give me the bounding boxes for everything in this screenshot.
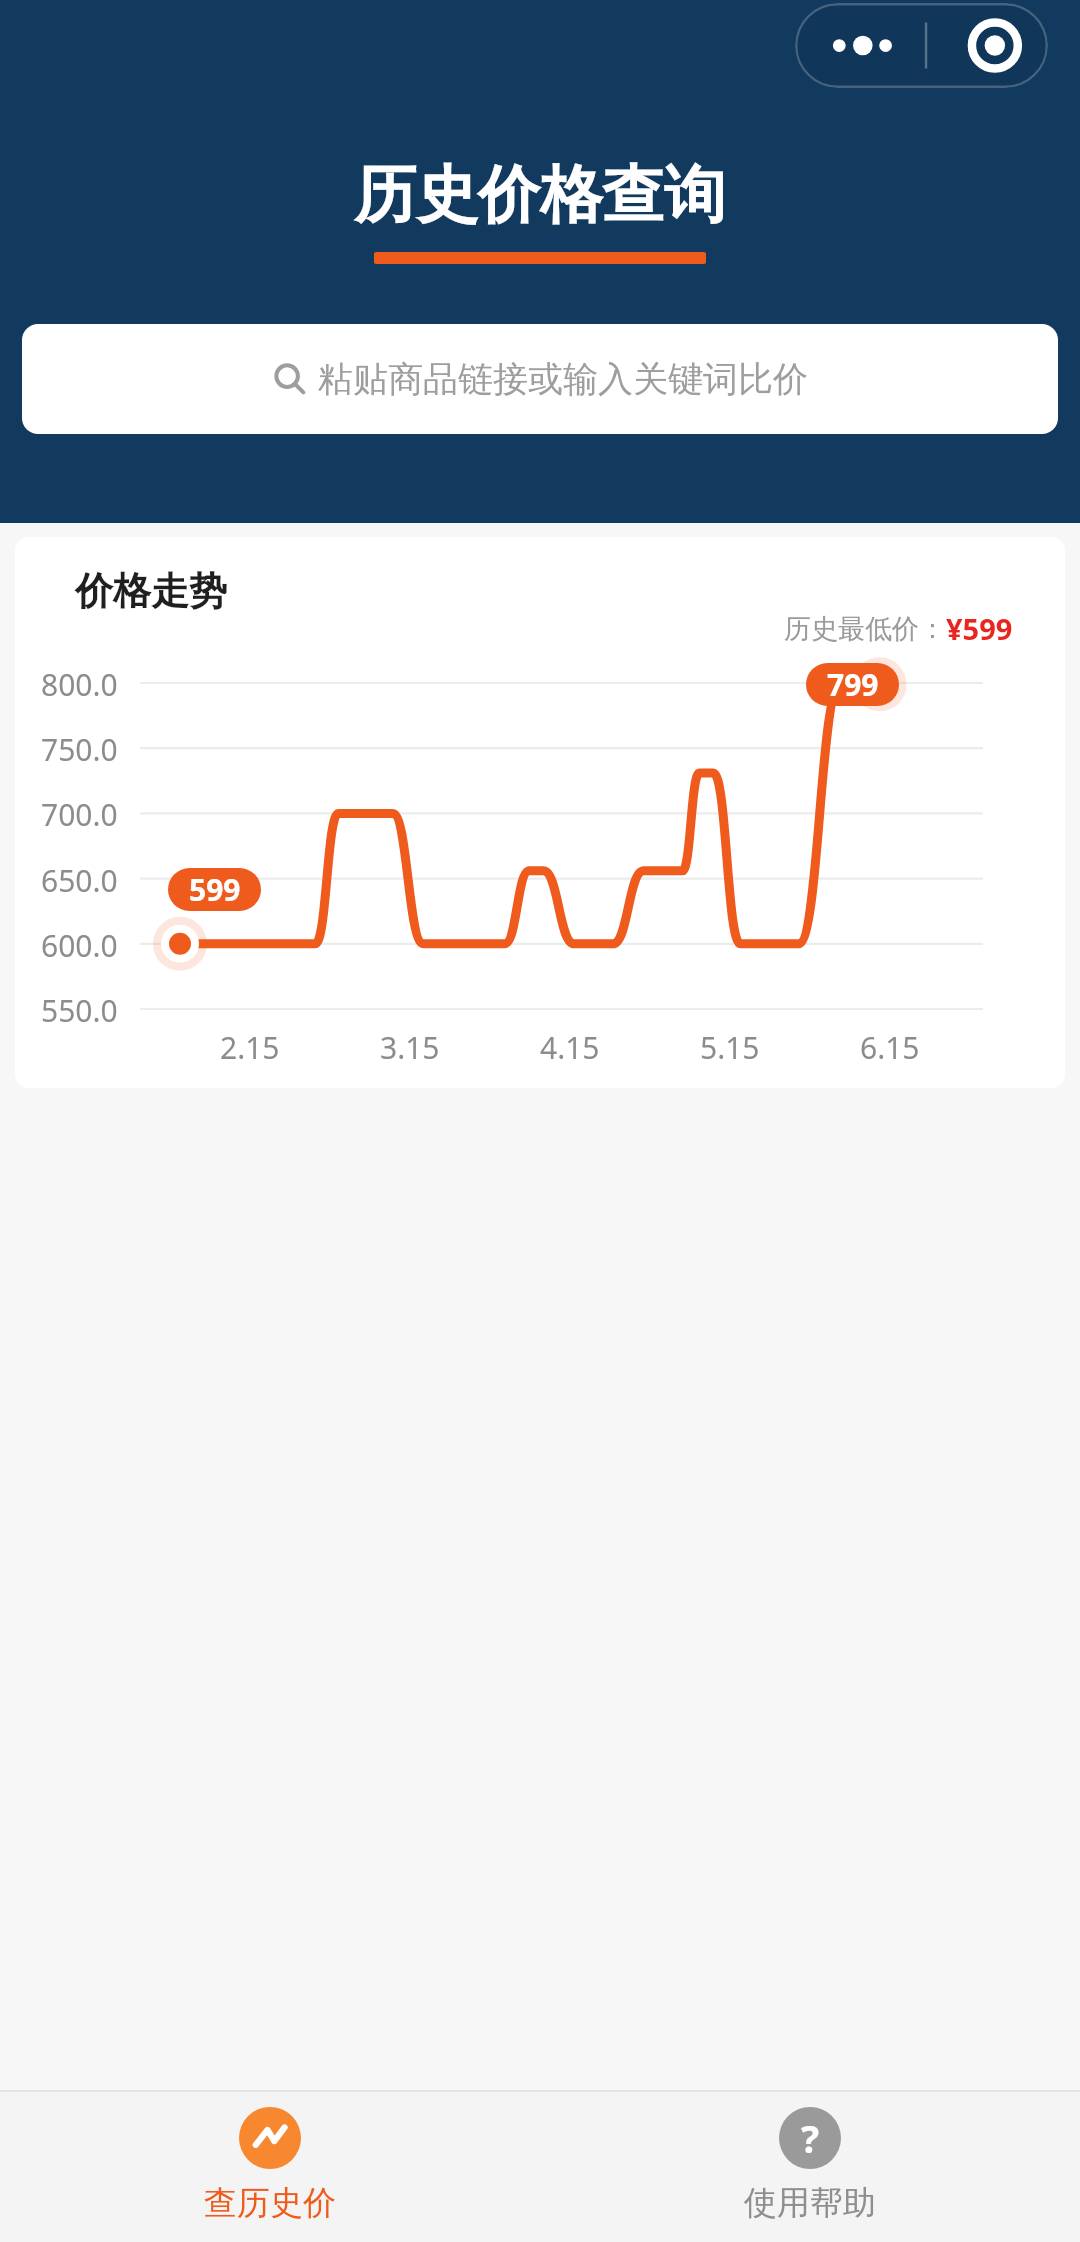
button[interactable]: More options and close [795,3,1048,88]
staticText: 5.15 [700,1027,760,1068]
staticText: 6.15 [860,1027,920,1068]
staticText: ? [801,2112,820,2164]
staticText: 4.15 [540,1027,600,1068]
staticText: ¥599 [946,609,1013,648]
staticText: 价格走势 [75,567,227,615]
staticText: 历史价格查询 [354,156,726,234]
staticText: 700.0 [41,794,118,835]
staticText: 3.15 [380,1027,440,1068]
staticText: 查历史价 [204,2182,336,2224]
staticText: 799 [827,664,879,705]
staticText: 历史最低价： [784,612,946,646]
button[interactable]: 粘贴商品链接或输入关键词比价 [22,324,1058,434]
staticText: 2.15 [220,1027,280,1068]
staticText: 800.0 [41,664,118,705]
staticText: 599 [189,869,241,910]
staticText: 650.0 [41,860,118,901]
staticText: 550.0 [41,990,118,1031]
staticText: 750.0 [41,729,118,770]
staticText: 600.0 [41,925,118,966]
button[interactable]: 查历史价 [0,2092,540,2242]
button[interactable]: ? [540,2092,1080,2242]
staticText: 使用帮助 [744,2182,876,2224]
staticText: 粘贴商品链接或输入关键词比价 [318,357,808,401]
